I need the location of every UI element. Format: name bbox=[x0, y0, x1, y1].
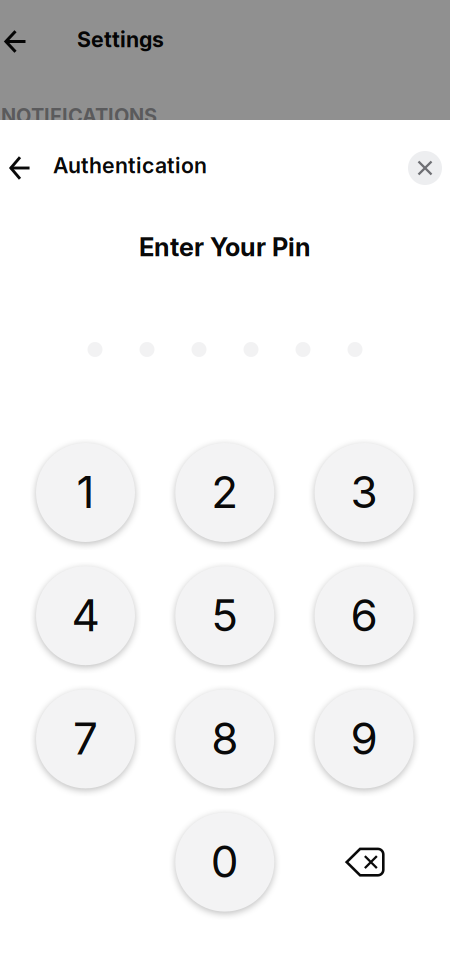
button[interactable]: 4 bbox=[36, 566, 135, 665]
button[interactable]: 7 bbox=[36, 689, 135, 788]
staticText: 0 bbox=[211, 836, 239, 887]
staticText: Authentication bbox=[53, 153, 207, 178]
button[interactable]: Close bbox=[0, 0, 450, 975]
staticText: 4 bbox=[71, 589, 99, 641]
staticText: 5 bbox=[211, 589, 238, 641]
staticText: 9 bbox=[351, 712, 378, 764]
button[interactable]: 3 bbox=[315, 443, 414, 542]
staticText: 1 bbox=[76, 466, 94, 518]
button[interactable]: 1 bbox=[36, 443, 135, 542]
staticText: NOTIFICATIONS bbox=[1, 104, 157, 128]
button[interactable]: 6 bbox=[315, 566, 414, 665]
staticText: 2 bbox=[211, 466, 238, 518]
button[interactable]: Back bbox=[0, 0, 450, 975]
button[interactable]: Delete bbox=[0, 0, 450, 975]
button[interactable]: 5 bbox=[175, 566, 274, 665]
staticText: 3 bbox=[351, 466, 378, 518]
button[interactable]: 9 bbox=[315, 689, 414, 788]
button[interactable]: 0 bbox=[175, 813, 274, 912]
staticText: Settings bbox=[77, 27, 164, 52]
staticText: 8 bbox=[211, 712, 238, 764]
button[interactable]: 8 bbox=[175, 689, 274, 788]
staticText: 6 bbox=[351, 589, 378, 641]
staticText: 7 bbox=[73, 712, 98, 764]
staticText: Enter Your Pin bbox=[139, 232, 311, 262]
button[interactable]: 2 bbox=[175, 443, 274, 542]
